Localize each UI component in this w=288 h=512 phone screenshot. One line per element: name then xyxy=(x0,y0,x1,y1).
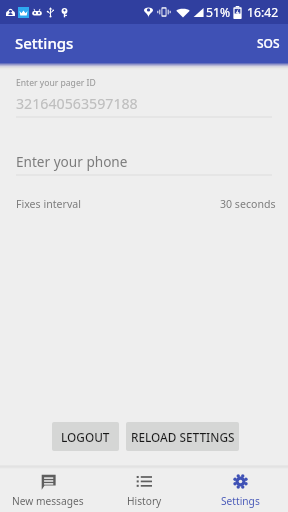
button[interactable]: RELOAD SETTINGS xyxy=(126,422,239,451)
staticText: Settings xyxy=(15,33,74,53)
staticText: 321640563597188 xyxy=(16,94,138,113)
staticText: Enter your pager ID xyxy=(16,77,96,89)
button[interactable]: SOS xyxy=(246,27,288,61)
staticText: 51% xyxy=(206,4,231,21)
button[interactable]: LOGOUT xyxy=(52,422,119,451)
staticText: Settings xyxy=(221,494,260,508)
staticText: LOGOUT xyxy=(61,429,110,445)
staticText: New messages xyxy=(12,494,84,508)
staticText: RELOAD SETTINGS xyxy=(131,429,235,445)
staticText: SOS xyxy=(257,35,280,51)
staticText: Fixes interval xyxy=(16,197,81,211)
button[interactable]: History xyxy=(96,465,192,512)
button[interactable]: Fixes interval xyxy=(0,197,288,211)
staticText: Enter your phone xyxy=(16,152,128,171)
staticText: 16:42 xyxy=(247,4,279,21)
button[interactable]: Enter your pager ID xyxy=(0,77,288,118)
button[interactable]: Settings xyxy=(192,465,288,512)
button[interactable]: New messages xyxy=(0,465,96,512)
staticText: History xyxy=(127,494,162,508)
staticText: 30 seconds xyxy=(220,197,276,211)
button[interactable]: Enter your phone xyxy=(0,152,288,176)
